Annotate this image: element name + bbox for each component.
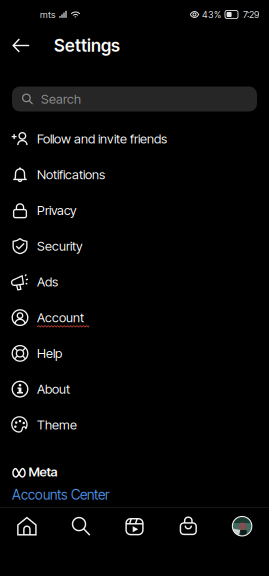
button[interactable]: Search bbox=[0, 62, 269, 121]
button[interactable]: Accounts Center bbox=[0, 480, 119, 505]
button[interactable]: About bbox=[0, 371, 269, 407]
staticText: 7:29 bbox=[243, 9, 259, 20]
button[interactable]: Profile bbox=[215, 516, 269, 537]
staticText: About bbox=[37, 381, 70, 397]
button[interactable]: Privacy bbox=[0, 192, 269, 228]
button[interactable]: Notifications bbox=[0, 157, 269, 193]
staticText: Follow and invite friends bbox=[37, 131, 167, 147]
button[interactable]: Shop bbox=[161, 516, 215, 537]
button[interactable]: Search bbox=[54, 516, 108, 537]
staticText: Meta bbox=[28, 464, 57, 480]
button[interactable]: Help bbox=[0, 335, 269, 371]
staticText: Notifications bbox=[37, 167, 105, 182]
button[interactable]: Follow and invite friends bbox=[0, 121, 269, 157]
staticText: Search bbox=[41, 91, 81, 107]
staticText: Settings bbox=[54, 35, 120, 56]
staticText: Theme bbox=[37, 417, 77, 433]
staticText: Help bbox=[37, 346, 62, 361]
staticText: Ads bbox=[37, 274, 58, 290]
button[interactable]: Ads bbox=[0, 264, 269, 300]
staticText: Account bbox=[37, 310, 84, 325]
staticText: mts bbox=[40, 9, 55, 20]
staticText: Security bbox=[37, 238, 83, 254]
button[interactable]: Back bbox=[6, 30, 36, 60]
staticText: Privacy bbox=[37, 203, 77, 218]
button[interactable]: Account bbox=[0, 300, 269, 336]
button[interactable]: Theme bbox=[0, 407, 269, 443]
staticText: 43% bbox=[202, 9, 221, 20]
button[interactable]: Reels bbox=[108, 516, 161, 537]
button[interactable]: Security bbox=[0, 228, 269, 264]
staticText: Accounts Center bbox=[12, 487, 109, 503]
button[interactable]: Home bbox=[0, 516, 54, 537]
